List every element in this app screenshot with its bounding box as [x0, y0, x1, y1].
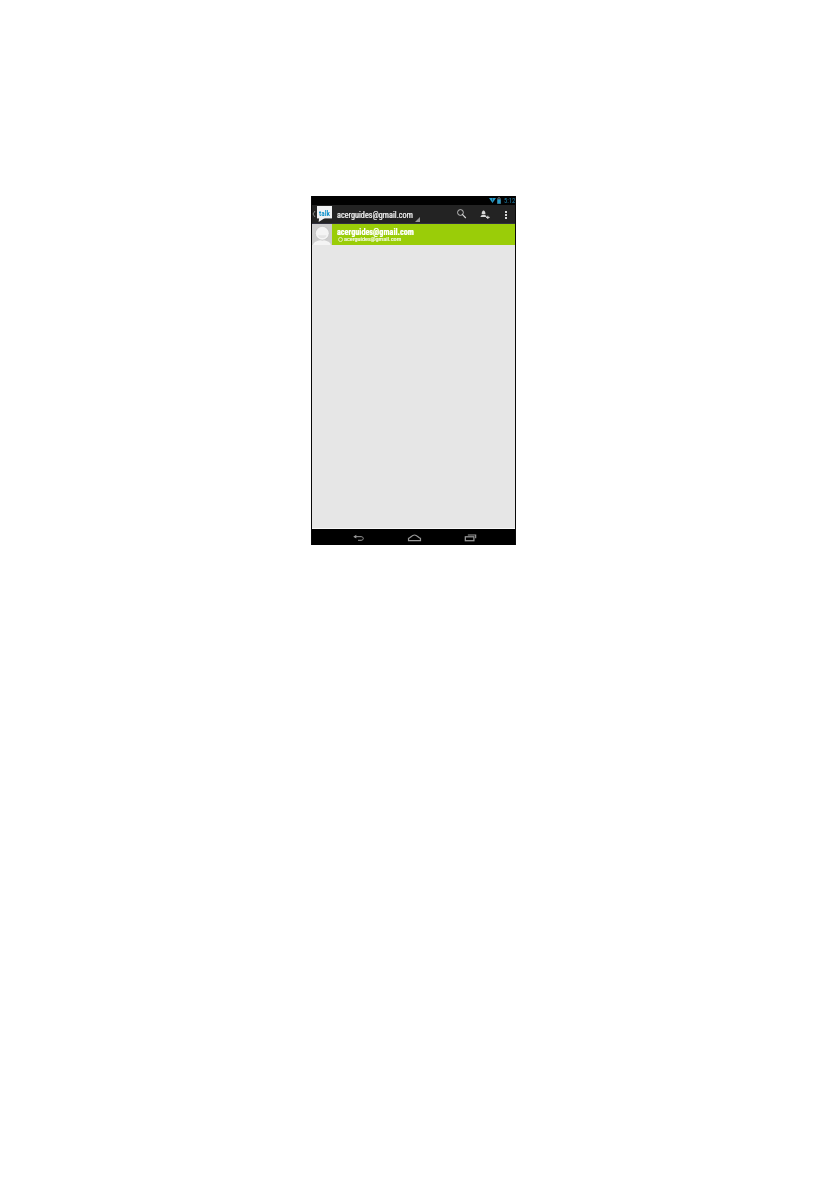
- button[interactable]: More options: [501, 205, 511, 224]
- button[interactable]: Home: [402, 529, 426, 545]
- staticText: talk: [319, 209, 331, 218]
- staticText: 5:12: [504, 197, 516, 205]
- button[interactable]: Add friend: [477, 205, 492, 224]
- button[interactable]: acerguides@gmail.com: [311, 224, 516, 245]
- button[interactable]: acerguides@gmail.com: [333, 205, 425, 224]
- staticText: acerguides@gmail.com: [337, 210, 413, 220]
- button[interactable]: Navigate up: [311, 205, 333, 224]
- button[interactable]: Back: [346, 529, 370, 545]
- button[interactable]: Recent apps: [458, 529, 482, 545]
- staticText: acerguides@gmail.com: [337, 227, 414, 237]
- staticText: acerguides@gmail.com: [344, 235, 402, 242]
- button[interactable]: Search: [454, 205, 469, 224]
